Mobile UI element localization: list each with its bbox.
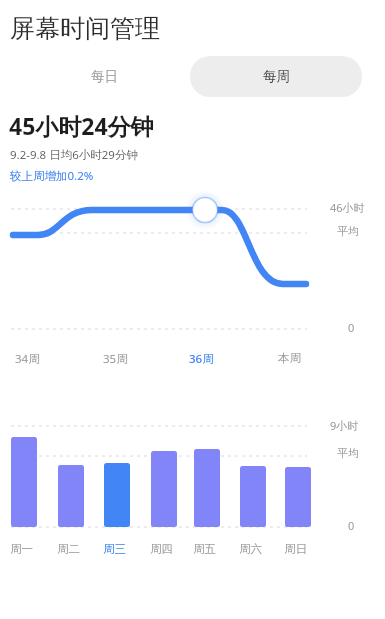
staticText: 每日: [91, 68, 118, 85]
button[interactable]: 每日: [22, 56, 187, 96]
staticText: 9小时: [330, 418, 359, 433]
staticText: 周四: [150, 542, 173, 556]
staticText: 周六: [239, 542, 262, 556]
button[interactable]: 每周: [190, 56, 362, 97]
staticText: 本周: [278, 351, 301, 365]
staticText: 9.2-9.8 日均6小时29分钟: [10, 147, 138, 163]
staticText: 平均: [337, 446, 359, 460]
staticText: 45小时24分钟: [9, 110, 154, 141]
staticText: 0: [348, 518, 355, 533]
staticText: 周日: [284, 542, 307, 556]
staticText: 35周: [103, 351, 128, 367]
staticText: 每周: [263, 68, 290, 85]
staticText: 屏幕时间管理: [10, 13, 160, 44]
staticText: 平均: [337, 224, 359, 238]
staticText: 46小时: [330, 200, 365, 215]
staticText: 0: [348, 320, 355, 335]
staticText: 周五: [193, 542, 216, 556]
staticText: 36周: [189, 351, 214, 367]
staticText: 34周: [15, 351, 40, 367]
staticText: 周一: [10, 542, 33, 556]
staticText: 周二: [57, 542, 80, 556]
staticText: 周三: [103, 542, 126, 556]
staticText: 较上周增加0.2%: [10, 168, 94, 184]
